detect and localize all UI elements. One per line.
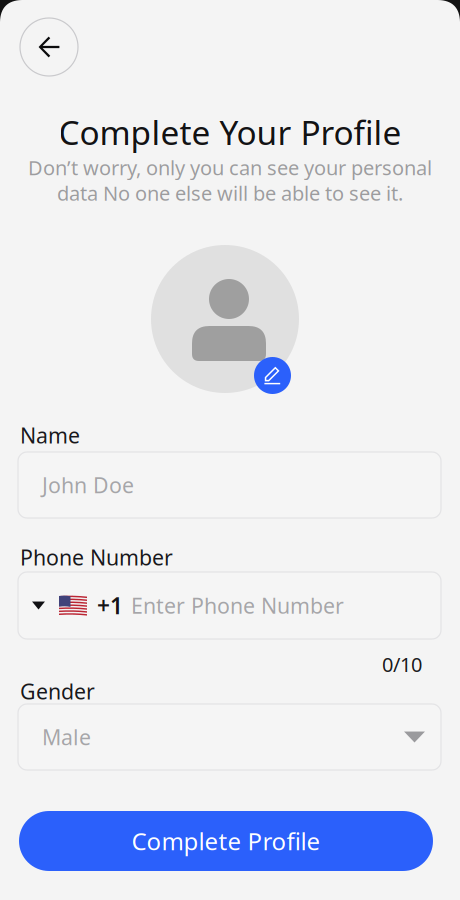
staticText: +1 (97, 590, 123, 620)
staticText: Complete Your Profile (58, 110, 401, 154)
staticText: John Doe (42, 471, 134, 499)
staticText: Don’t worry, only you can see your perso… (28, 154, 432, 181)
staticText: Gender (20, 677, 95, 705)
staticText: Male (42, 723, 91, 751)
staticText: Enter Phone Number (131, 591, 344, 620)
button[interactable]: Edit profile photo (254, 357, 291, 394)
staticText: 0/10 (382, 651, 422, 678)
staticText: data No one else will be able to see it. (57, 180, 403, 206)
button[interactable]: Back (20, 18, 78, 76)
staticText: Name (20, 421, 80, 449)
staticText: Complete Profile (131, 825, 320, 857)
button[interactable]: Complete Profile (19, 811, 433, 871)
staticText: Phone Number (20, 543, 173, 571)
